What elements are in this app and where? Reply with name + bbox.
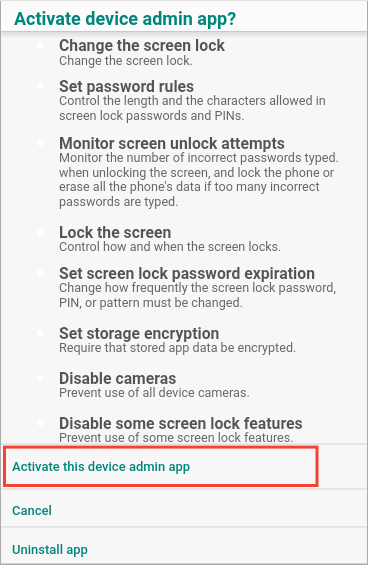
- staticText: Prevent use of all device cameras.: [59, 385, 250, 400]
- staticText: Set storage encryption: [59, 324, 220, 342]
- staticText: Set password rules: [59, 77, 195, 95]
- staticText: Monitor screen unlock attempts: [59, 134, 285, 152]
- staticText: Control how and when the screen locks.: [59, 239, 282, 254]
- button[interactable]: Activate this device admin app: [0, 445, 368, 489]
- staticText: Set screen lock password expiration: [59, 264, 315, 282]
- staticText: Control the length and the characters al…: [59, 93, 326, 108]
- staticText: Change the screen lock.: [59, 53, 193, 68]
- staticText: Activate device admin app?: [14, 8, 237, 29]
- staticText: erase all the phone's data if too many i…: [59, 179, 320, 194]
- staticText: passwords are typed.: [59, 194, 179, 209]
- staticText: Lock the screen: [59, 223, 172, 241]
- staticText: Prevent use of some screen lock features…: [59, 430, 294, 445]
- staticText: Change the screen lock: [59, 36, 225, 54]
- staticText: Disable some screen lock features: [59, 414, 303, 432]
- staticText: PIN, or pattern must be changed.: [59, 295, 243, 310]
- staticText: Activate this device admin app: [12, 459, 191, 474]
- staticText: when unlocking the screen, and lock the …: [59, 165, 335, 180]
- staticText: Change how frequently the screen lock pa…: [59, 280, 336, 295]
- staticText: Cancel: [12, 503, 52, 518]
- staticText: screen lock passwords and PINs.: [59, 108, 245, 123]
- staticText: Uninstall app: [12, 542, 88, 557]
- staticText: Require that stored app data be encrypte…: [59, 340, 297, 355]
- staticText: Monitor the number of incorrect password…: [59, 150, 339, 165]
- button[interactable]: Cancel: [0, 490, 368, 527]
- button[interactable]: Uninstall app: [0, 528, 368, 565]
- staticText: Disable cameras: [59, 369, 177, 387]
